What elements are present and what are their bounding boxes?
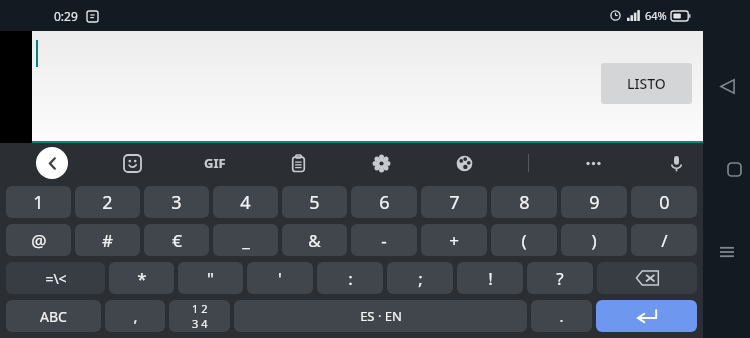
button[interactable]: Home: [719, 151, 750, 187]
staticText: ": [207, 267, 214, 290]
button[interactable]: .: [531, 300, 592, 332]
staticText: LISTO: [627, 74, 666, 93]
button[interactable]: =\<: [6, 262, 105, 294]
staticText: 9: [589, 190, 600, 215]
staticText: GIF: [204, 154, 226, 172]
button[interactable]: 8: [491, 186, 557, 218]
button[interactable]: Recent apps: [709, 234, 745, 270]
staticText: 1 2: [192, 301, 208, 316]
button[interactable]: 9: [561, 186, 627, 218]
button[interactable]: Enter: [596, 300, 697, 332]
button[interactable]: :: [317, 262, 383, 294]
staticText: =\<: [45, 269, 67, 288]
staticText: .: [559, 306, 564, 326]
staticText: ,: [133, 306, 138, 326]
button[interactable]: LISTO: [601, 63, 692, 104]
button[interactable]: 1: [6, 186, 71, 218]
button[interactable]: _: [213, 224, 278, 256]
button[interactable]: !: [457, 262, 523, 294]
staticText: 8: [519, 190, 530, 215]
button[interactable]: 2: [75, 186, 140, 218]
staticText: 1: [33, 190, 44, 215]
button[interactable]: @: [6, 224, 71, 256]
button[interactable]: (: [491, 224, 557, 256]
staticText: _: [242, 229, 250, 252]
staticText: 6: [379, 190, 390, 215]
staticText: :: [348, 267, 353, 290]
button[interactable]: *: [109, 262, 174, 294]
staticText: 3 4: [192, 316, 208, 331]
staticText: 3: [171, 190, 182, 215]
staticText: ;: [418, 267, 423, 290]
staticText: 64%: [645, 8, 667, 23]
button[interactable]: More options: [574, 144, 612, 182]
staticText: &: [308, 229, 321, 252]
staticText: ?: [556, 267, 564, 290]
button[interactable]: Number pad: [169, 300, 230, 332]
button[interactable]: -: [351, 224, 417, 256]
button[interactable]: ,: [105, 300, 165, 332]
button[interactable]: 7: [421, 186, 487, 218]
button[interactable]: Back: [709, 68, 745, 104]
button[interactable]: ': [247, 262, 313, 294]
staticText: !: [488, 267, 493, 290]
button[interactable]: Clipboard: [279, 144, 317, 182]
button[interactable]: #: [75, 224, 140, 256]
button[interactable]: /: [631, 224, 697, 256]
staticText: ABC: [40, 307, 67, 326]
button[interactable]: Themes: [445, 144, 483, 182]
button[interactable]: €: [144, 224, 209, 256]
staticText: 5: [309, 190, 320, 215]
button[interactable]: ES · EN: [234, 300, 527, 332]
button[interactable]: Backspace: [597, 262, 697, 294]
button[interactable]: ;: [387, 262, 453, 294]
button[interactable]: 5: [282, 186, 347, 218]
staticText: 2: [102, 190, 113, 215]
button[interactable]: ABC: [6, 300, 101, 332]
staticText: -: [381, 229, 387, 252]
button[interactable]: 0: [631, 186, 697, 218]
button[interactable]: 6: [351, 186, 417, 218]
button[interactable]: 3: [144, 186, 209, 218]
staticText: /: [661, 229, 668, 252]
staticText: (: [521, 229, 527, 252]
button[interactable]: GIF: [196, 144, 234, 182]
button[interactable]: ": [178, 262, 243, 294]
staticText: *: [137, 267, 147, 290]
button[interactable]: Collapse toolbar: [36, 147, 68, 179]
button[interactable]: 4: [213, 186, 278, 218]
button[interactable]: ?: [527, 262, 593, 294]
staticText: ': [278, 267, 282, 290]
button[interactable]: Voice input: [657, 144, 695, 182]
staticText: ): [591, 229, 597, 252]
staticText: 4: [240, 190, 251, 215]
staticText: ES · EN: [360, 307, 402, 325]
staticText: €: [172, 229, 182, 252]
staticText: +: [449, 229, 459, 252]
button[interactable]: ): [561, 224, 627, 256]
button[interactable]: &: [282, 224, 347, 256]
staticText: 0:29: [54, 8, 78, 24]
button[interactable]: Settings: [362, 144, 400, 182]
button[interactable]: +: [421, 224, 487, 256]
staticText: @: [31, 229, 47, 252]
staticText: 7: [449, 190, 460, 215]
button[interactable]: Stickers: [113, 144, 151, 182]
staticText: #: [102, 229, 113, 252]
staticText: 0: [659, 190, 670, 215]
